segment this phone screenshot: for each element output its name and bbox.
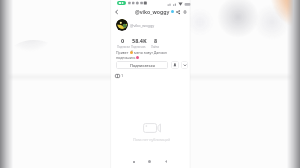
staticText: Подписаться [130,63,155,68]
staticText: меня зовут Даниил [134,50,167,55]
staticText: Привет [116,50,129,55]
button[interactable]: Profile photo [116,19,128,31]
button[interactable]: Find friends [171,61,179,69]
button[interactable]: Share [175,9,181,15]
staticText: 58.4K [132,37,147,44]
button[interactable]: Expand [181,61,188,69]
staticText: @viko_woggy [130,23,155,28]
button[interactable]: Подписаться [116,61,168,69]
button[interactable]: 0 [115,37,131,49]
staticText: 8 [154,37,158,44]
button[interactable]: 1 [115,72,124,79]
staticText: Лайки [151,45,160,49]
button[interactable]: 58.4K [131,37,147,53]
button[interactable]: 8 [147,37,164,49]
staticText: Пока нет публикаций [133,137,171,142]
staticText: 1 [121,73,124,78]
button[interactable]: Back [113,9,119,15]
staticText: Подписчики [131,45,147,53]
staticText: 0 [121,37,125,44]
button[interactable]: Back [162,158,169,165]
staticText: @viko_woggy [135,8,170,15]
staticText: подпишись [116,55,136,60]
button[interactable]: Home [146,158,153,165]
button[interactable]: Recents [130,158,137,165]
staticText: Подписки [117,45,130,49]
button[interactable]: More options [182,9,188,15]
